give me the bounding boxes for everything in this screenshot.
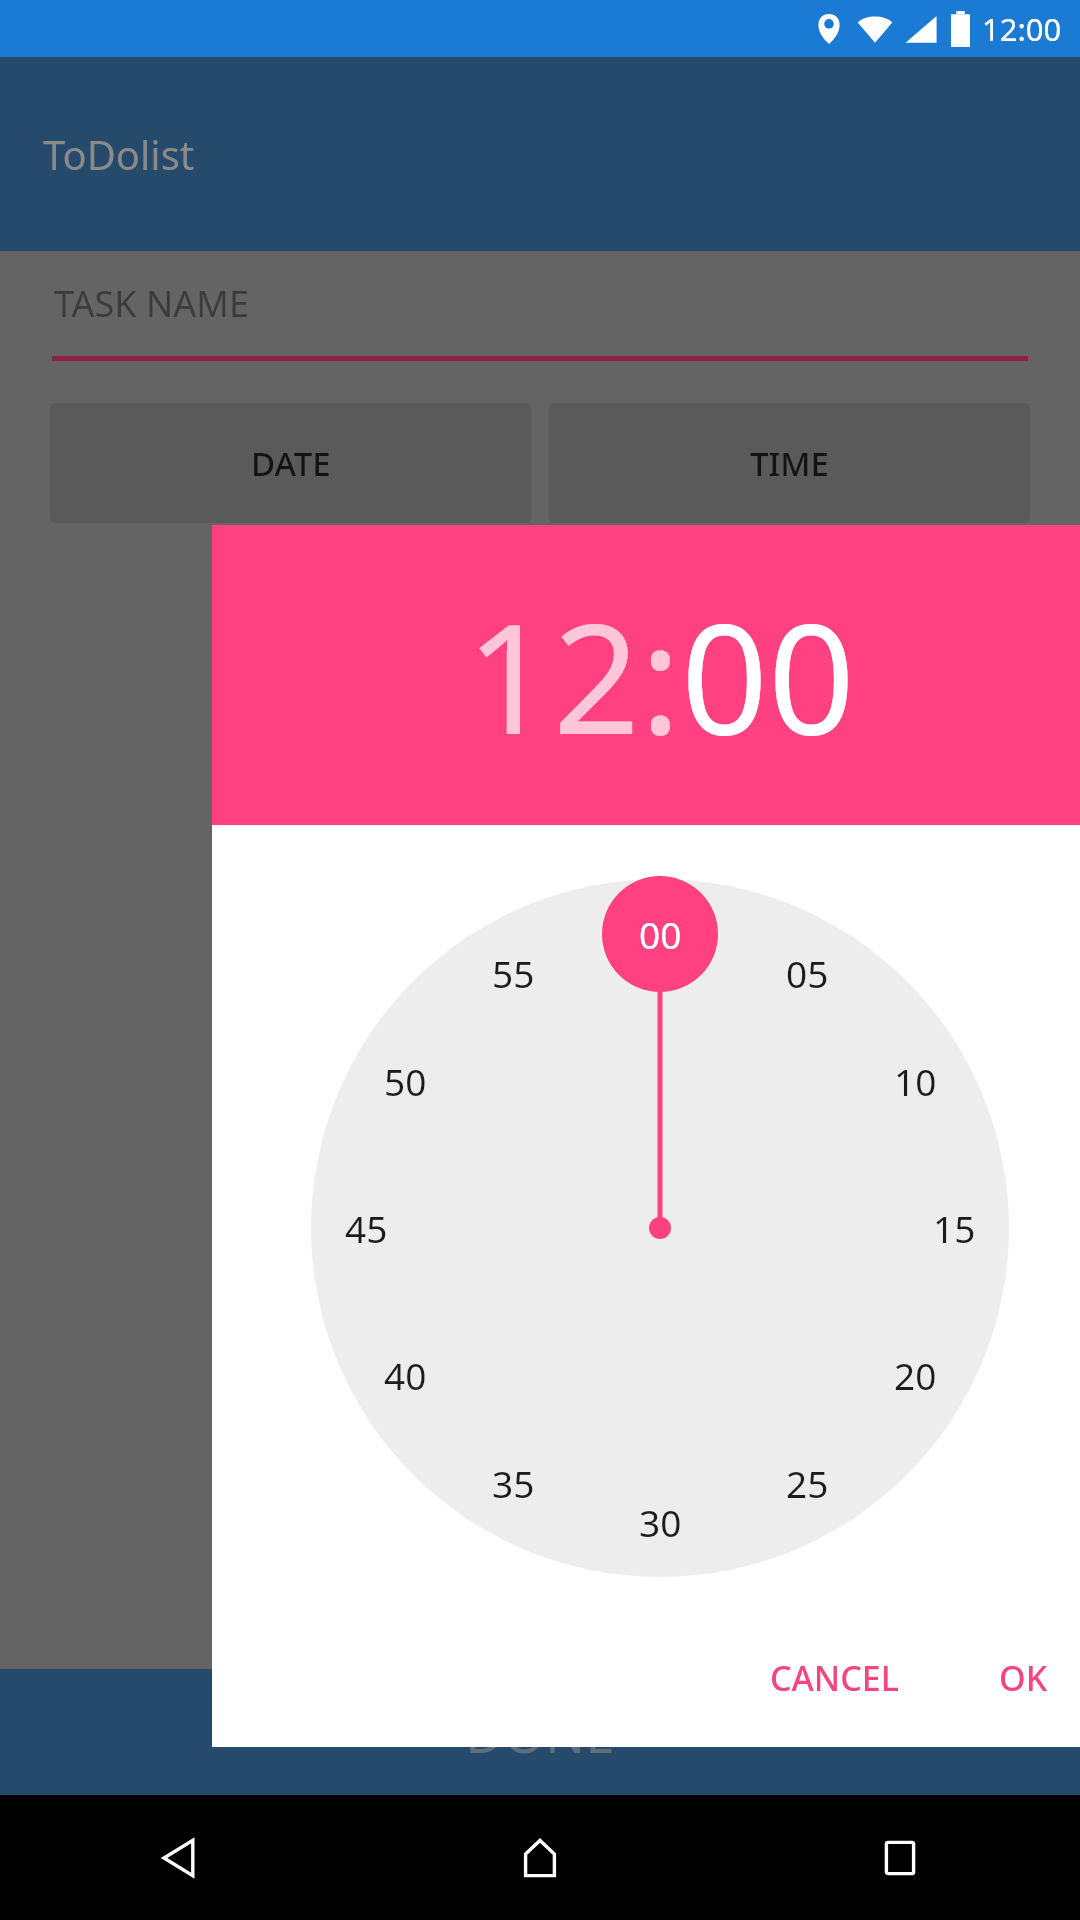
staticText: 05	[786, 948, 829, 998]
staticText: 35	[492, 1458, 535, 1508]
staticText: 45	[345, 1203, 388, 1253]
staticText: ToDolist	[43, 127, 195, 181]
button[interactable]: 00	[604, 900, 716, 968]
staticText: :	[640, 572, 681, 779]
staticText: 55	[492, 948, 535, 998]
button[interactable]: 35	[457, 1449, 569, 1517]
staticText: TIME	[750, 441, 829, 486]
staticText: 30	[639, 1497, 682, 1547]
button[interactable]: 05	[751, 939, 863, 1007]
staticText: 10	[894, 1056, 937, 1106]
button[interactable]: TIME	[549, 403, 1030, 523]
button[interactable]: Home	[360, 1795, 720, 1920]
button[interactable]: 55	[457, 939, 569, 1007]
button[interactable]: 45	[310, 1194, 422, 1262]
button[interactable]: Recent apps	[720, 1795, 1080, 1920]
staticText: 12:00	[982, 8, 1062, 50]
button[interactable]: 30	[604, 1488, 716, 1556]
button[interactable]: DATE	[50, 403, 531, 523]
staticText: 25	[786, 1458, 829, 1508]
button[interactable]: 12	[466, 572, 640, 779]
button[interactable]: Back	[0, 1795, 360, 1920]
button[interactable]: CANCEL	[746, 1637, 923, 1719]
button[interactable]: 00	[681, 572, 855, 779]
staticText: OK	[999, 1655, 1048, 1701]
staticText: DATE	[251, 441, 331, 486]
staticText: TASK NAME	[54, 279, 249, 328]
button[interactable]: 25	[751, 1449, 863, 1517]
staticText: 50	[384, 1056, 427, 1106]
staticText: 15	[933, 1203, 976, 1253]
staticText: 12	[466, 572, 640, 779]
button[interactable]: 40	[349, 1341, 461, 1409]
button[interactable]: 15	[898, 1194, 1010, 1262]
staticText: CANCEL	[770, 1655, 899, 1701]
staticText: 00	[639, 909, 682, 959]
button[interactable]: 10	[859, 1047, 971, 1115]
staticText: 40	[384, 1350, 427, 1400]
button[interactable]: 20	[859, 1341, 971, 1409]
staticText: DONE	[465, 1696, 615, 1768]
button[interactable]: DONE	[0, 1669, 1080, 1795]
staticText: 20	[894, 1350, 937, 1400]
button[interactable]: 50	[349, 1047, 461, 1115]
button[interactable]: OK	[975, 1637, 1072, 1719]
staticText: 00	[681, 572, 855, 779]
